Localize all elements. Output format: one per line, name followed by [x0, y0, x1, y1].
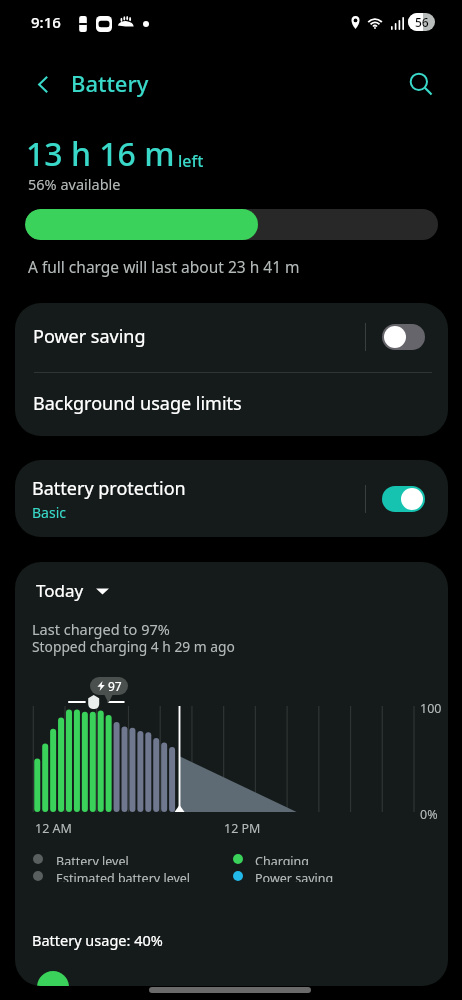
- staticText: Charging: [255, 853, 310, 865]
- button[interactable]: Switch on: [382, 486, 425, 512]
- staticText: 13 h 16 m: [26, 132, 175, 176]
- staticText: Power saving: [33, 324, 146, 349]
- staticText: Battery protection: [32, 476, 186, 501]
- staticText: 0%: [420, 806, 438, 823]
- button[interactable]: Power saving: [15, 303, 448, 370]
- button[interactable]: Navigate up: [21, 62, 65, 106]
- staticText: Last charged to 97%: [32, 619, 170, 639]
- staticText: Stopped charging 4 h 29 m ago: [32, 637, 235, 656]
- staticText: 12 PM: [224, 820, 261, 837]
- button[interactable]: Battery protection: [15, 460, 448, 537]
- staticText: left: [178, 150, 204, 172]
- staticText: 9:16: [31, 12, 61, 32]
- staticText: A full charge will last about 23 h 41 m: [28, 256, 300, 277]
- staticText: 97: [108, 678, 122, 694]
- staticText: Battery usage: 40%: [32, 930, 163, 950]
- staticText: Basic: [32, 503, 66, 522]
- staticText: Battery level: [56, 853, 129, 865]
- button[interactable]: Today: [36, 579, 109, 602]
- staticText: 56% available: [28, 174, 121, 194]
- button[interactable]: Search: [399, 62, 443, 106]
- staticText: Background usage limits: [33, 391, 242, 416]
- staticText: Battery: [71, 68, 149, 98]
- button[interactable]: Switch off: [382, 324, 425, 350]
- staticText: 56: [415, 14, 429, 30]
- staticText: Estimated battery level: [56, 870, 191, 882]
- button[interactable]: Background usage limits: [15, 370, 448, 436]
- staticText: Today: [36, 579, 84, 602]
- staticText: 100: [420, 700, 442, 717]
- staticText: 12 AM: [35, 820, 72, 837]
- staticText: Power saving: [255, 870, 334, 882]
